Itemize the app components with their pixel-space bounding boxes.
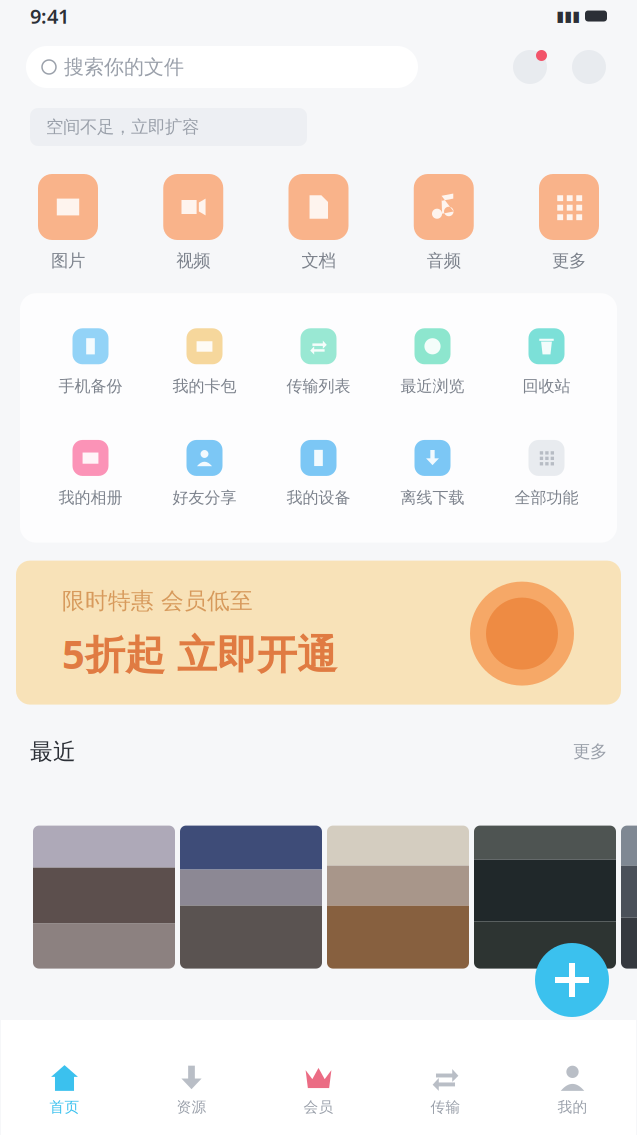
button[interactable]: 好友分享 [147,440,261,508]
staticText: 首页 [49,1098,79,1116]
staticText: 我的卡包 [172,376,236,396]
button[interactable]: 图片 [22,174,114,271]
staticText: 5折起 立即开通 [62,627,337,680]
button[interactable]: 首页 [1,1020,128,1135]
button[interactable]: 会员 [255,1020,382,1135]
staticText: 离线下载 [400,488,464,508]
staticText: ▮▮▮ [556,8,580,24]
button[interactable]: 手机备份 [33,328,147,396]
staticText: 传输 [430,1098,460,1116]
staticText: 最近 [30,738,76,765]
staticText: 更多 [552,250,586,271]
staticText: 好友分享 [172,488,236,508]
staticText: 搜索你的文件 [64,55,184,79]
staticText: 回收站 [522,376,570,396]
staticText: 空间不足，立即扩容 [46,116,199,138]
staticText: 更多 [573,741,607,762]
staticText: 文档 [301,250,335,271]
button[interactable]: 视频 [147,174,239,271]
button[interactable]: 上传 [535,943,609,1017]
staticText: 最近浏览 [400,376,464,396]
button[interactable]: 更多 [569,47,609,87]
staticText: 图片 [51,250,85,271]
button[interactable]: 传输 [382,1020,509,1135]
staticText: 我的 [557,1098,587,1116]
button[interactable]: 我的 [509,1020,636,1135]
button[interactable]: 我的相册 [33,440,147,508]
button[interactable]: 搜索你的文件 [26,46,418,88]
button[interactable]: 更多 [523,174,615,271]
button[interactable]: 更多 [573,741,607,762]
button[interactable]: 音频 [398,174,490,271]
staticText: 音频 [427,250,461,271]
button[interactable]: 文档 [272,174,364,271]
staticText: 资源 [176,1098,206,1116]
button[interactable]: 消息 [509,46,551,88]
staticText: 限时特惠 会员低至 [62,587,253,615]
staticText: 视频 [176,250,210,271]
staticText: 会员 [303,1098,333,1116]
staticText: 我的设备 [286,488,350,508]
button[interactable]: 最近浏览 [375,328,489,396]
button[interactable]: 离线下载 [375,440,489,508]
staticText: 全部功能 [514,488,578,508]
button[interactable]: 限时特惠 会员低至 [16,561,621,707]
staticText: 传输列表 [286,376,350,396]
staticText: 手机备份 [58,376,122,396]
button[interactable]: 回收站 [489,328,603,396]
button[interactable]: 我的卡包 [147,328,261,396]
staticText: 9:41 [30,3,69,29]
button[interactable]: 全部功能 [489,440,603,508]
button[interactable]: 我的设备 [261,440,375,508]
button[interactable]: 传输列表 [261,328,375,396]
staticText: 我的相册 [58,488,122,508]
button[interactable]: 资源 [128,1020,255,1135]
